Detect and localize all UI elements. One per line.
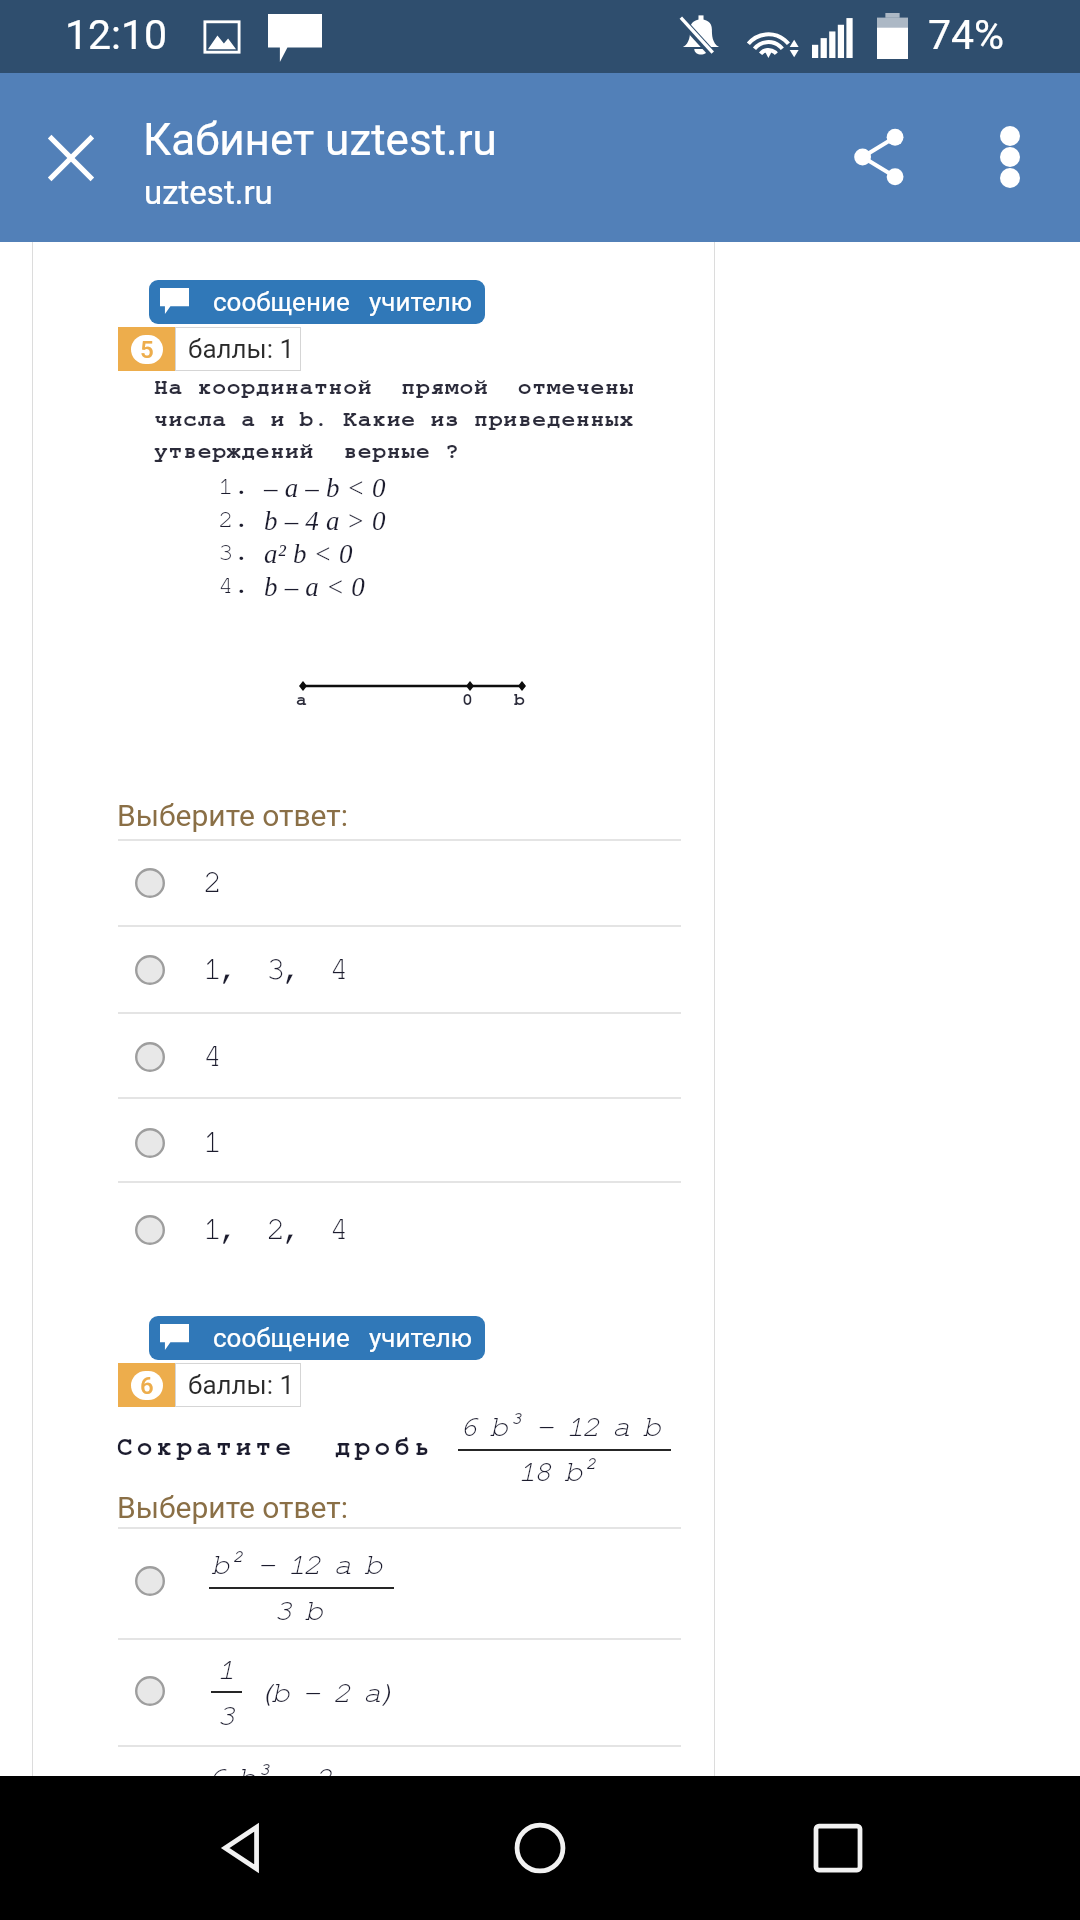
staticText: 1. <box>218 473 250 499</box>
button[interactable]: Share <box>832 109 928 205</box>
button[interactable] <box>118 839 714 925</box>
button[interactable]: Back <box>186 1792 298 1904</box>
staticText: Сократите дробь <box>117 1434 434 1460</box>
button[interactable] <box>118 925 714 1012</box>
button[interactable]: сообщение учителю <box>149 1316 485 1360</box>
button[interactable]: Home <box>484 1792 596 1904</box>
staticText: утверждений верные ? <box>154 440 460 463</box>
staticText: баллы: 1 <box>188 334 295 364</box>
staticText: 3 b <box>274 1595 320 1626</box>
button[interactable] <box>118 1097 714 1181</box>
staticText: b – 4 a > 0 <box>264 506 386 536</box>
staticText: uztest.ru <box>144 173 273 212</box>
button[interactable]: сообщение учителю <box>149 280 485 324</box>
button[interactable]: Close <box>23 110 119 206</box>
staticText: 1 <box>217 1654 233 1685</box>
staticText: числа a и b. Какие из приведенных <box>154 408 635 431</box>
button[interactable] <box>118 1181 714 1267</box>
staticText: b² – 12 a b <box>211 1549 380 1580</box>
staticText: 6 <box>140 1372 154 1400</box>
staticText: 2 <box>203 866 219 898</box>
button[interactable]: Recent apps <box>782 1792 894 1904</box>
staticText: 6 b³ – 2 <box>207 1762 330 1793</box>
staticText: 3 <box>217 1700 233 1731</box>
staticText: (b – 2 a) <box>256 1677 394 1708</box>
button[interactable] <box>118 1638 714 1745</box>
staticText: – a – b < 0 <box>264 473 386 503</box>
staticText: На координатной прямой отмечены <box>154 376 635 399</box>
staticText: 0 <box>462 691 473 709</box>
staticText: 3. <box>218 539 250 565</box>
staticText: 1, 2, 4 <box>203 1213 346 1245</box>
staticText: 2. <box>218 506 250 532</box>
staticText: 74% <box>928 11 1005 59</box>
staticText: сообщение учителю <box>213 287 473 317</box>
staticText: b <box>514 691 525 709</box>
staticText: 6 b³ – 12 a b <box>459 1411 658 1442</box>
staticText: Выберите ответ: <box>117 1490 349 1525</box>
staticText: 5 <box>140 336 154 364</box>
staticText: Выберите ответ: <box>117 798 349 833</box>
staticText: сообщение учителю <box>213 1323 473 1353</box>
button[interactable] <box>118 1012 714 1097</box>
staticText: 18 b² <box>518 1456 595 1487</box>
staticText: a <box>296 691 307 709</box>
staticText: Кабинет uztest.ru <box>143 114 497 166</box>
button[interactable]: More options <box>962 109 1058 205</box>
staticText: 12:10 <box>65 11 168 59</box>
staticText: 1, 3, 4 <box>203 953 346 985</box>
staticText: 4 <box>203 1040 219 1072</box>
staticText: 1 <box>203 1126 219 1158</box>
button[interactable] <box>118 1527 714 1638</box>
staticText: b – a < 0 <box>264 572 366 602</box>
staticText: a² b < 0 <box>264 539 353 569</box>
staticText: баллы: 1 <box>188 1370 295 1400</box>
staticText: 4. <box>218 572 250 598</box>
